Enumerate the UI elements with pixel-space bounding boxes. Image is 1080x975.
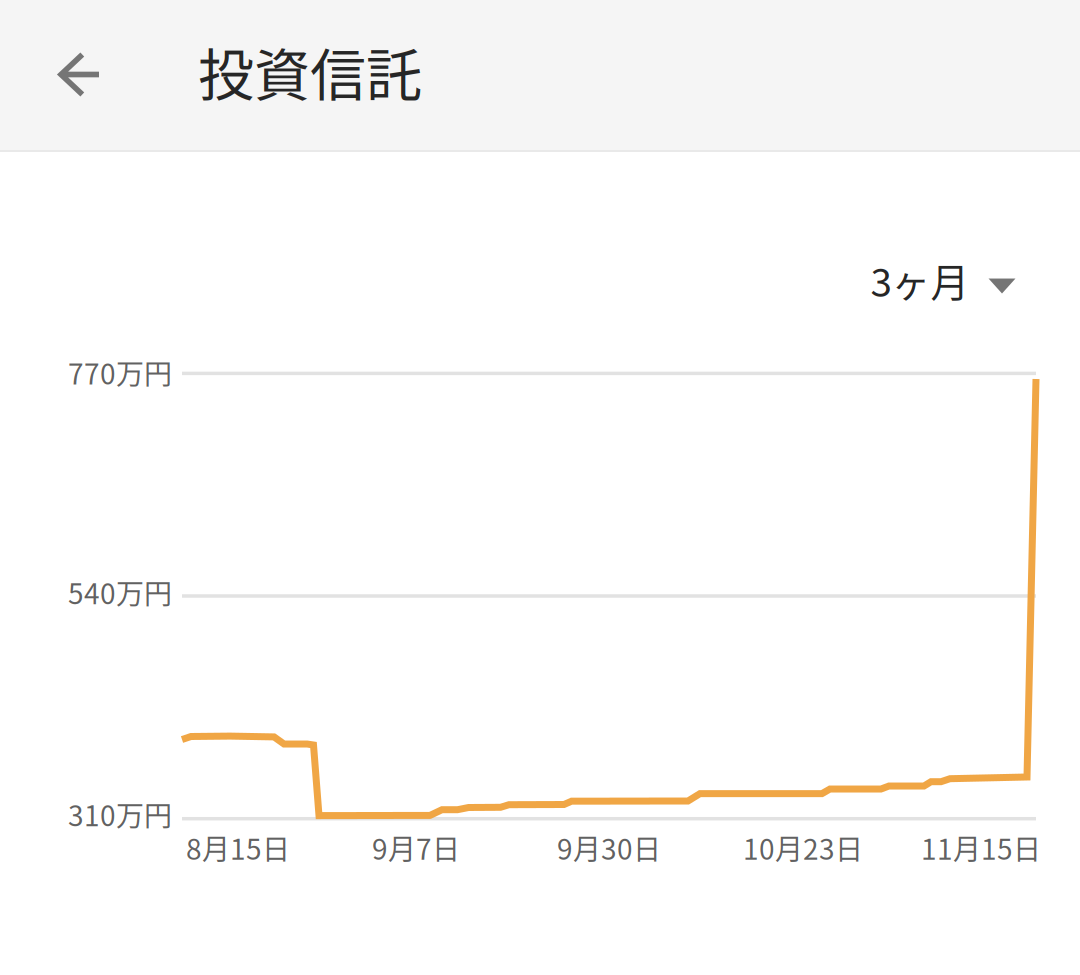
staticText: 8月15日 — [186, 827, 290, 868]
staticText: 10月23日 — [743, 827, 863, 868]
staticText: 11月15日 — [921, 827, 1041, 868]
staticText: 9月30日 — [557, 827, 661, 868]
staticText: 9月7日 — [372, 827, 460, 868]
staticText: 770万円 — [68, 352, 172, 393]
staticText: 3ヶ月 — [870, 252, 969, 308]
staticText: 投資信託 — [198, 30, 422, 112]
staticText: 540万円 — [68, 572, 172, 612]
button[interactable]: Back — [15, 0, 145, 149]
staticText: 310万円 — [68, 794, 172, 834]
button[interactable]: 3ヶ月 — [852, 234, 1039, 326]
